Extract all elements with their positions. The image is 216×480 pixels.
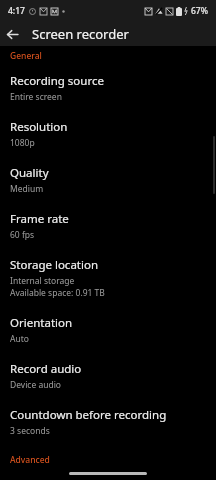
- button[interactable]: Record audio: [0, 352, 216, 398]
- button[interactable]: Storage location: [0, 248, 216, 306]
- staticText: Medium: [10, 183, 44, 195]
- staticText: Resolution: [10, 119, 68, 135]
- staticText: Frame rate: [10, 211, 69, 227]
- staticText: Available space: 0.91 TB: [10, 287, 105, 299]
- staticText: Storage location: [10, 257, 99, 273]
- button[interactable]: Resolution: [0, 110, 216, 156]
- button[interactable]: Countdown before recording: [0, 398, 216, 444]
- staticText: Countdown before recording: [10, 407, 167, 423]
- button[interactable]: Back: [0, 22, 24, 46]
- staticText: Orientation: [10, 315, 73, 331]
- staticText: Recording source: [10, 73, 104, 89]
- staticText: Internal storage: [10, 275, 75, 287]
- staticText: Entire screen: [10, 91, 62, 103]
- staticText: General: [10, 50, 42, 62]
- button[interactable]: Orientation: [0, 306, 216, 352]
- staticText: 4:17: [8, 5, 25, 17]
- staticText: 60 fps: [10, 229, 35, 241]
- staticText: Record audio: [10, 361, 82, 377]
- button[interactable]: Recording source: [0, 64, 216, 110]
- staticText: 1080p: [10, 137, 35, 149]
- button[interactable]: Frame rate: [0, 202, 216, 248]
- staticText: 3 seconds: [10, 425, 50, 437]
- staticText: Screen recorder: [32, 25, 129, 43]
- staticText: Advanced: [10, 454, 50, 464]
- staticText: Auto: [10, 333, 29, 345]
- staticText: 67%: [191, 5, 208, 17]
- button[interactable]: Quality: [0, 156, 216, 202]
- staticText: Quality: [10, 165, 49, 181]
- staticText: Device audio: [10, 379, 62, 391]
